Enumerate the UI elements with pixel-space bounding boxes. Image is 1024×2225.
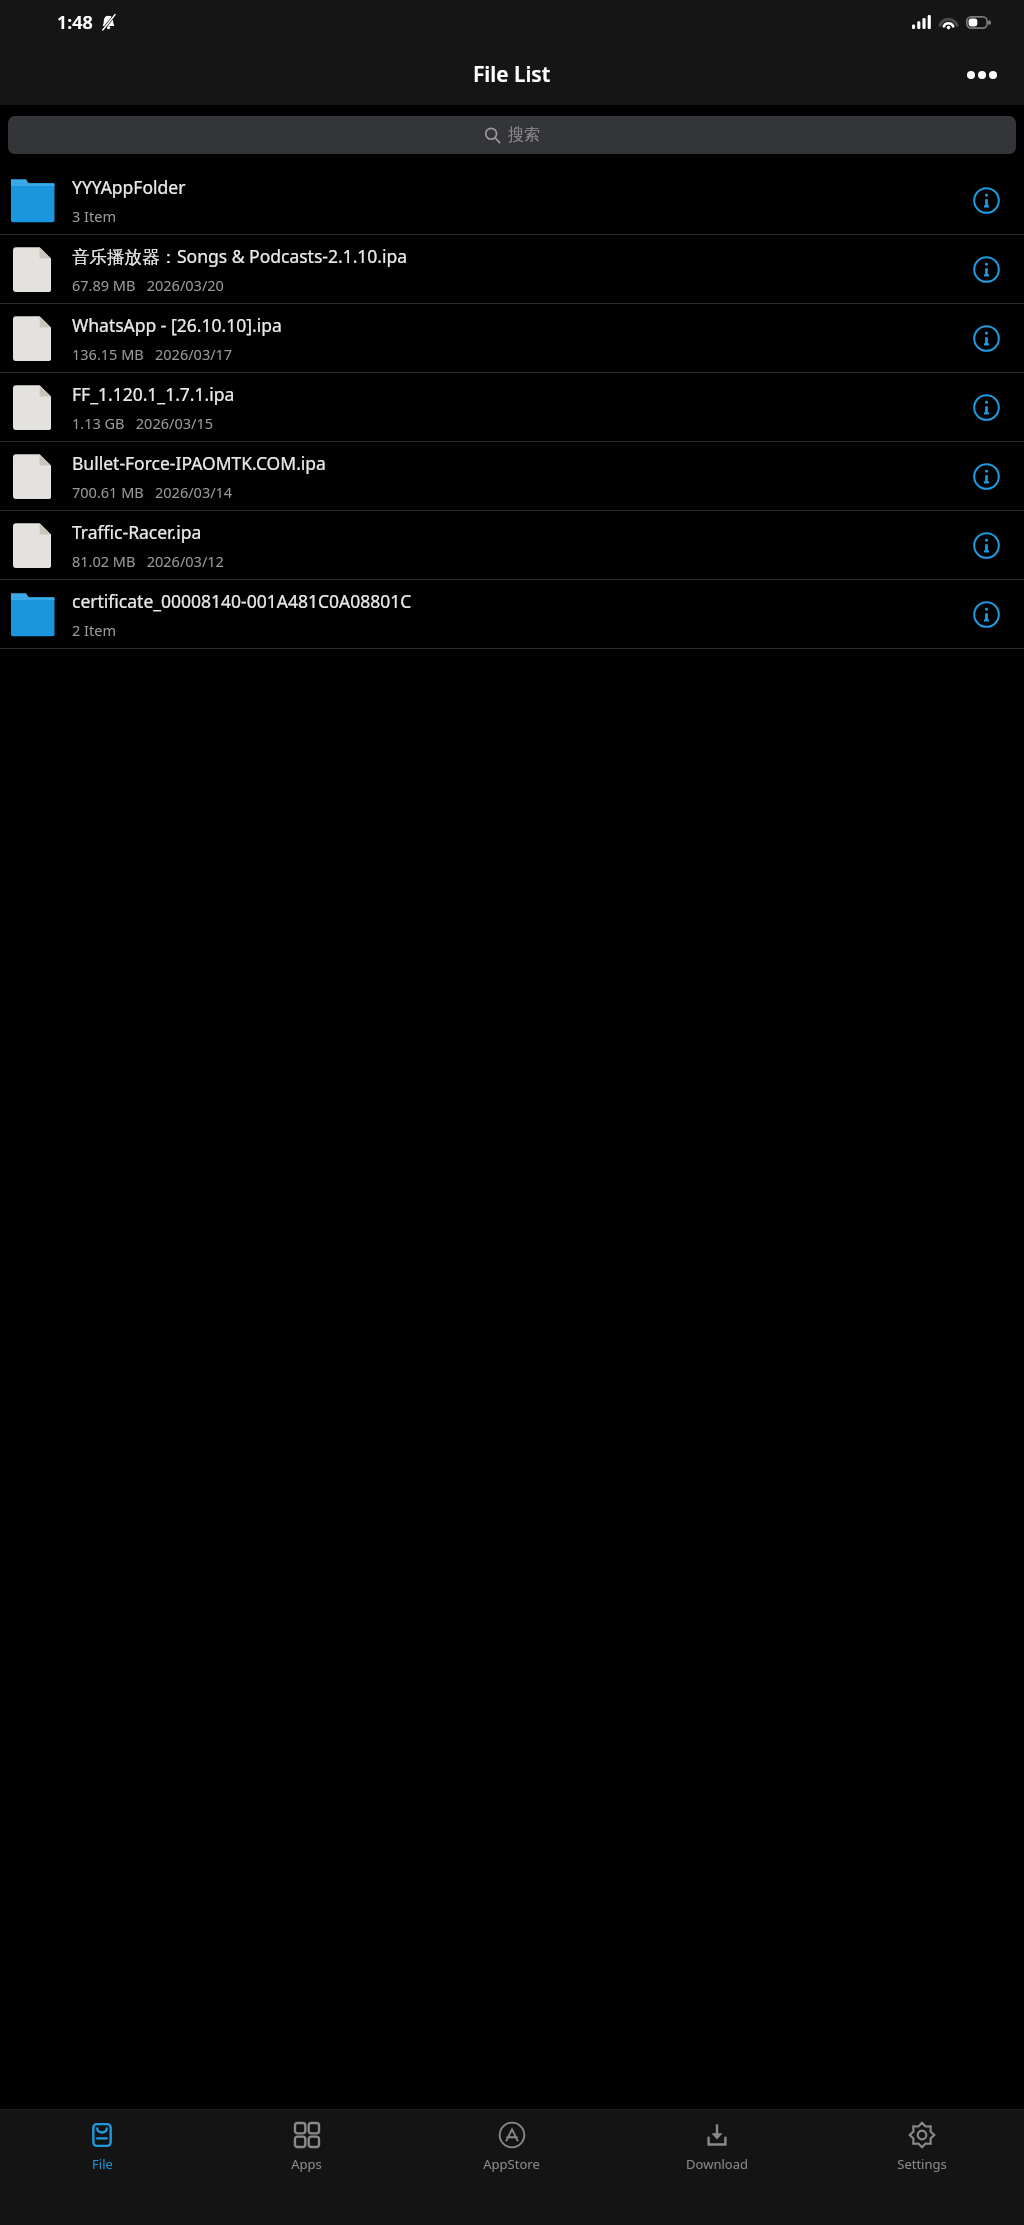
staticText: Download [686,2155,748,2173]
staticText: AppStore [483,2155,540,2173]
staticText: File [92,2155,113,2173]
staticText: 700.61 MB 2026/03/14 [72,482,233,502]
staticText: certificate_00008140-001A481C0A08801C [72,589,412,613]
button[interactable]: Settings [819,2110,1024,2195]
button[interactable]: File [0,2110,204,2195]
button[interactable]: Info [964,454,1008,498]
staticText: 3 Item [72,206,116,226]
button[interactable]: Info [964,592,1008,636]
button[interactable]: 搜索 [8,116,1016,154]
button[interactable]: FF_1.120.1_1.7.1.ipa [0,373,1024,441]
button[interactable]: Info [964,247,1008,291]
staticText: Bullet-Force-IPAOMTK.COM.ipa [72,451,326,475]
button[interactable]: Info [964,178,1008,222]
staticText: 2 Item [72,620,116,640]
button[interactable]: YYYAppFolder [0,166,1024,234]
staticText: 1.13 GB 2026/03/15 [72,413,213,433]
staticText: 136.15 MB 2026/03/17 [72,344,233,364]
button[interactable]: AppStore [409,2110,614,2195]
button[interactable]: WhatsApp - [26.10.10].ipa [0,304,1024,372]
staticText: 1:48 [57,10,93,35]
button[interactable]: certificate_00008140-001A481C0A08801C [0,580,1024,648]
button[interactable]: Download [614,2110,819,2195]
staticText: Traffic-Racer.ipa [72,520,202,544]
button[interactable]: Traffic-Racer.ipa [0,511,1024,579]
button[interactable]: More options [960,53,1004,97]
staticText: 67.89 MB 2026/03/20 [72,275,224,295]
button[interactable]: Info [964,316,1008,360]
button[interactable]: Info [964,385,1008,429]
button[interactable]: Apps [204,2110,409,2195]
staticText: Settings [897,2155,947,2173]
button[interactable]: 音乐播放器：Songs & Podcasts-2.1.10.ipa [0,235,1024,303]
button[interactable]: Info [964,523,1008,567]
staticText: 音乐播放器：Songs & Podcasts-2.1.10.ipa [72,244,408,268]
staticText: WhatsApp - [26.10.10].ipa [72,313,282,337]
button[interactable]: Bullet-Force-IPAOMTK.COM.ipa [0,442,1024,510]
staticText: Apps [291,2155,322,2173]
staticText: File List [473,60,551,89]
staticText: 搜索 [508,125,540,145]
staticText: FF_1.120.1_1.7.1.ipa [72,382,235,406]
staticText: YYYAppFolder [72,175,186,199]
staticText: 81.02 MB 2026/03/12 [72,551,224,571]
